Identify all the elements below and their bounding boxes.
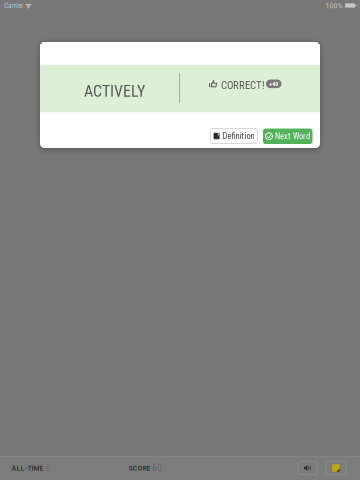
staticText: CORRECT! bbox=[221, 79, 265, 91]
button[interactable]: Sound bbox=[298, 461, 317, 474]
staticText: Definition bbox=[222, 131, 254, 141]
button[interactable]: Definition bbox=[210, 128, 257, 143]
staticText: SCORE bbox=[128, 463, 150, 473]
staticText: 100% bbox=[326, 1, 343, 10]
button[interactable]: Next Word bbox=[263, 128, 312, 144]
button[interactable]: Notes bbox=[326, 461, 346, 474]
staticText: Next Word bbox=[275, 131, 310, 141]
staticText: 0 bbox=[46, 463, 50, 473]
staticText: +40 bbox=[269, 80, 278, 87]
staticText: Carrier bbox=[4, 1, 23, 10]
staticText: ALL-TIME bbox=[11, 463, 43, 473]
staticText: ACTIVELY bbox=[84, 82, 145, 101]
staticText: 60 bbox=[152, 462, 162, 474]
